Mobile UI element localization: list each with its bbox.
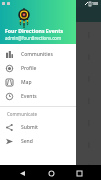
button[interactable]: Recents [72,166,86,180]
button[interactable]: Back [15,166,29,180]
staticText: Four Directions Events [5,27,64,34]
staticText: Communities [21,51,53,58]
button[interactable]: Events [0,89,76,103]
staticText: Submit [21,124,38,131]
staticText: Events [21,93,37,100]
button[interactable]: Submit [0,120,76,134]
staticText: Map [21,79,32,86]
button[interactable]: Send [0,134,76,148]
staticText: Communicate [7,111,38,117]
staticText: Send [21,138,33,145]
button[interactable]: Map [0,75,76,89]
staticText: admin@fourdirections.com [5,35,62,41]
button[interactable]: Profile [0,61,76,75]
staticText: Profile [21,65,37,72]
button[interactable]: Home [44,166,58,180]
staticText: 100 [92,1,99,6]
button[interactable]: Communities [0,47,76,61]
